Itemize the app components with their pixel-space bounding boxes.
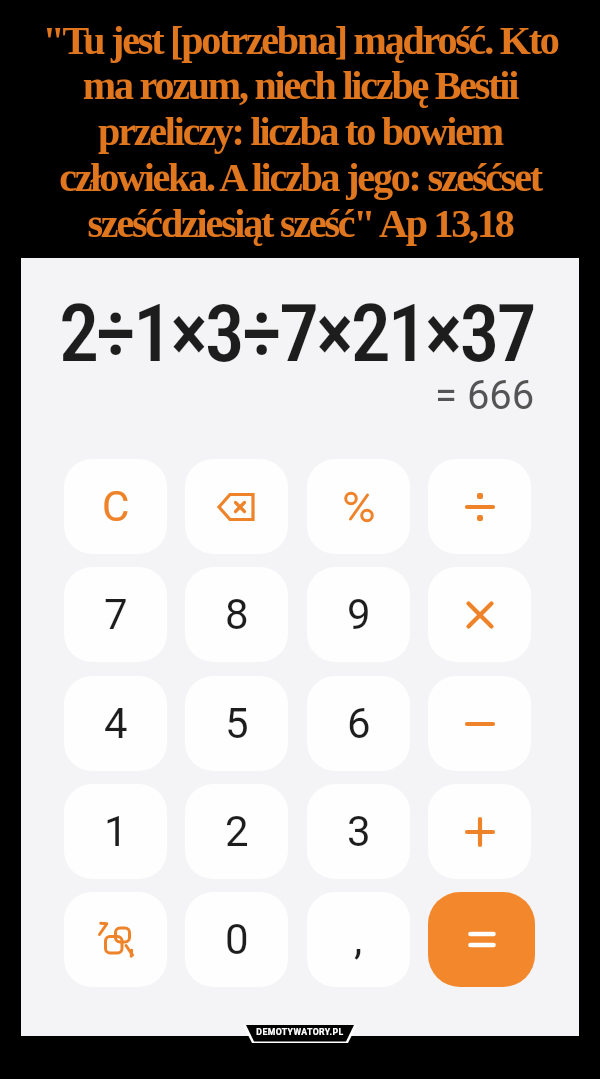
staticText: 9 — [347, 590, 371, 639]
staticText: 5 — [225, 699, 249, 748]
button[interactable]: 4 — [64, 676, 167, 771]
button[interactable] — [64, 892, 167, 987]
button[interactable]: 3 — [307, 784, 410, 879]
staticText: 3 — [347, 807, 371, 856]
staticText: 1 — [104, 807, 128, 856]
button[interactable] — [428, 676, 531, 771]
button[interactable] — [428, 567, 531, 662]
button[interactable]: 9 — [307, 567, 410, 662]
button[interactable]: 2 — [185, 784, 288, 879]
staticText: 2 — [225, 807, 249, 856]
staticText: C — [102, 482, 130, 531]
staticText: 0 — [225, 915, 249, 964]
button[interactable]: 7 — [64, 567, 167, 662]
button[interactable]: 1 — [64, 784, 167, 879]
button[interactable]: 6 — [307, 676, 410, 771]
button[interactable] — [185, 459, 288, 554]
staticText: 8 — [225, 590, 249, 639]
button[interactable]: 0 — [185, 892, 288, 987]
staticText: 4 — [104, 699, 128, 748]
staticText: 6 — [347, 699, 371, 748]
staticText: DEMOTYWATORY.PL — [0, 1027, 600, 1037]
staticText: = 666 — [435, 372, 535, 419]
staticText: , — [354, 915, 363, 964]
button[interactable] — [307, 459, 410, 554]
button[interactable]: 5 — [185, 676, 288, 771]
button[interactable] — [428, 459, 531, 554]
button[interactable]: , — [307, 892, 410, 987]
button[interactable]: 8 — [185, 567, 288, 662]
staticText: "Tu jest [potrzebna] mądrość. Kto ma roz… — [0, 18, 600, 246]
staticText: 7 — [104, 590, 128, 639]
staticText: 2÷1×3÷7×21×37 — [59, 287, 534, 381]
button[interactable]: C — [64, 459, 167, 554]
button[interactable] — [428, 892, 535, 987]
button[interactable] — [428, 784, 531, 879]
